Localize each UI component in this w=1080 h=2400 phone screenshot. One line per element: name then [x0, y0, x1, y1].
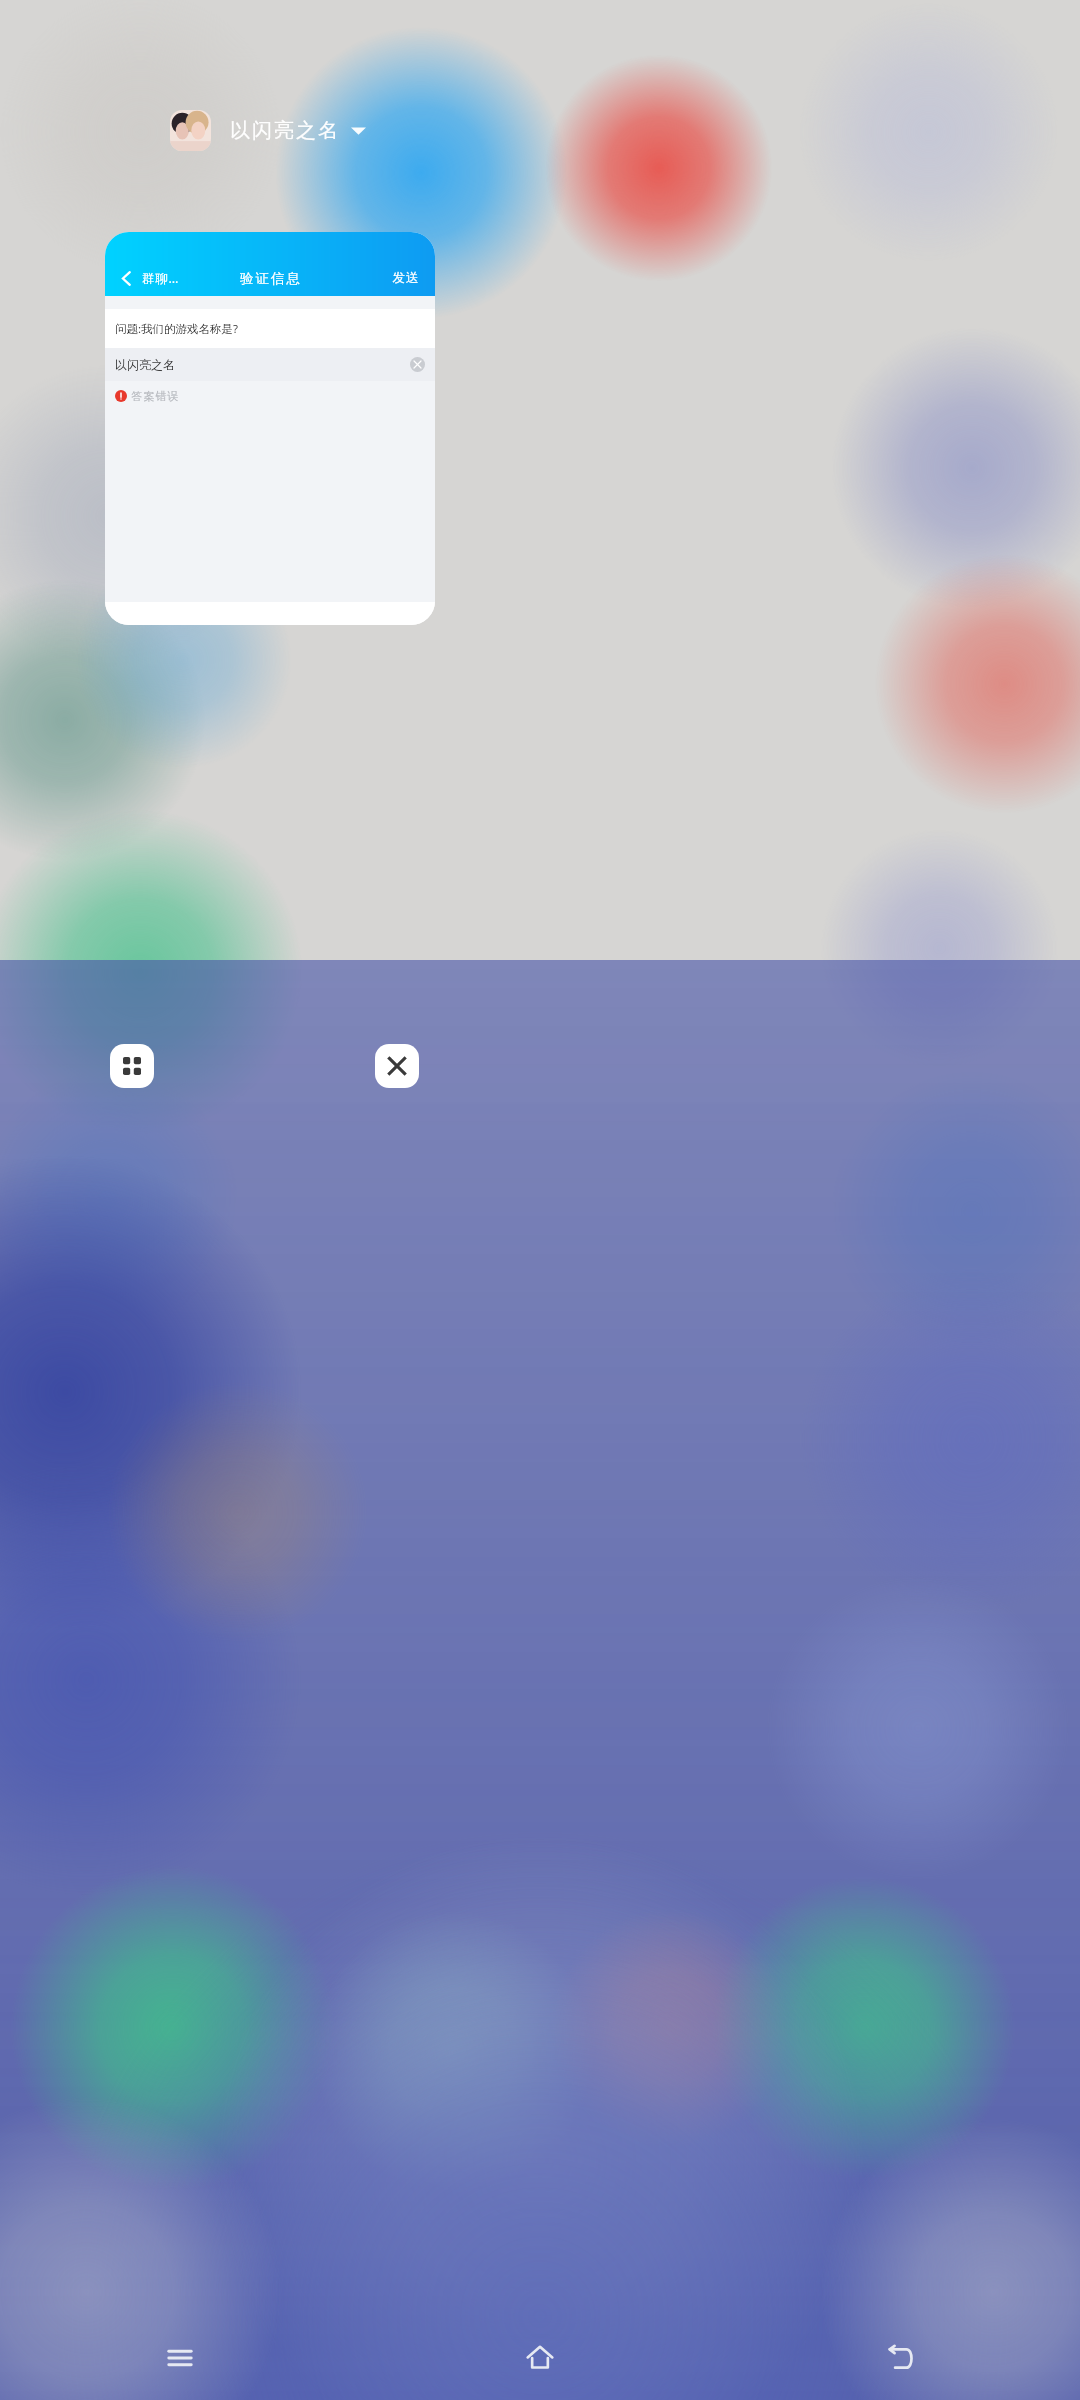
button[interactable]: Close all [375, 1044, 419, 1088]
staticText: 验证信息 [239, 270, 301, 287]
button[interactable]: 发送 [392, 270, 435, 286]
staticText: 以闪亮之名 [115, 357, 175, 372]
button[interactable]: Recents [0, 2316, 360, 2400]
staticText: 发送 [392, 270, 419, 286]
button[interactable]: Clear [410, 357, 425, 372]
other: Back [119, 271, 134, 286]
button[interactable]: 以闪亮之名 [170, 110, 366, 151]
button[interactable]: 问题:我们的游戏名称是? [105, 309, 435, 348]
staticText: 群聊… [142, 270, 180, 287]
staticText: 以闪亮之名 [229, 118, 339, 143]
staticText: 答案错误 [131, 389, 179, 403]
staticText: 问题:我们的游戏名称是? [115, 321, 239, 337]
button[interactable]: All apps [110, 1044, 154, 1088]
button[interactable]: Home [360, 2316, 720, 2400]
button[interactable]: 以闪亮之名 [105, 348, 435, 381]
button[interactable]: Back [720, 2316, 1080, 2400]
button[interactable]: Back [119, 270, 180, 287]
